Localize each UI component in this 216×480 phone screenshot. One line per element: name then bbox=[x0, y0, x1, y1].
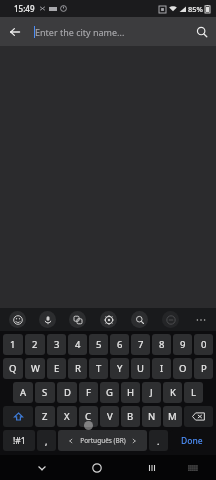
button[interactable]: D bbox=[57, 382, 77, 403]
staticText: 0 bbox=[201, 338, 207, 351]
button[interactable]: G bbox=[100, 382, 119, 403]
button[interactable]: 7 bbox=[131, 334, 150, 355]
button[interactable]: X bbox=[57, 406, 77, 427]
staticText: C bbox=[85, 410, 92, 423]
staticText: H bbox=[127, 386, 135, 399]
staticText: N bbox=[148, 410, 156, 423]
staticText: G bbox=[106, 386, 113, 399]
staticText: 2 bbox=[32, 338, 38, 351]
button[interactable]: Shift bbox=[3, 406, 33, 427]
button[interactable]: Home bbox=[86, 457, 108, 479]
button[interactable]: C bbox=[79, 406, 98, 427]
staticText: K bbox=[170, 386, 176, 399]
staticText: , bbox=[45, 435, 48, 447]
button[interactable]: T bbox=[89, 358, 108, 379]
button[interactable]: Recent apps bbox=[141, 457, 163, 479]
button[interactable]: 8 bbox=[152, 334, 171, 355]
staticText: 3 bbox=[54, 338, 60, 351]
button[interactable]: Emoji bbox=[9, 311, 26, 328]
button[interactable]: More options bbox=[193, 312, 209, 328]
button[interactable]: A bbox=[13, 382, 33, 403]
button[interactable]: U bbox=[131, 358, 150, 379]
button[interactable]: 6 bbox=[110, 334, 129, 355]
staticText: L bbox=[191, 386, 196, 399]
staticText: 9 bbox=[180, 338, 186, 351]
button[interactable]: J bbox=[142, 382, 161, 403]
staticText: S bbox=[42, 386, 48, 399]
button[interactable]: 1 bbox=[3, 334, 23, 355]
staticText: R bbox=[75, 362, 81, 375]
button[interactable]: 3 bbox=[47, 334, 66, 355]
staticText: B bbox=[127, 410, 134, 423]
button[interactable]: Space, Português (BR) bbox=[58, 430, 147, 451]
staticText: I bbox=[160, 362, 164, 375]
button[interactable]: K bbox=[163, 382, 182, 403]
button[interactable]: Enter the city name... bbox=[29, 17, 187, 46]
staticText: F bbox=[86, 386, 91, 399]
staticText: W bbox=[31, 362, 40, 375]
button[interactable]: W bbox=[25, 358, 45, 379]
staticText: . bbox=[157, 435, 160, 447]
button[interactable]: , bbox=[37, 430, 56, 451]
button[interactable]: Voice input bbox=[39, 311, 56, 328]
button[interactable]: . bbox=[149, 430, 168, 451]
button[interactable]: Z bbox=[35, 406, 55, 427]
button[interactable]: 5 bbox=[89, 334, 108, 355]
button[interactable]: B bbox=[121, 406, 140, 427]
staticText: V bbox=[107, 410, 113, 423]
button[interactable]: Settings bbox=[100, 311, 117, 328]
button[interactable]: R bbox=[68, 358, 87, 379]
staticText: O bbox=[179, 362, 187, 375]
staticText: 5 bbox=[96, 338, 102, 351]
button[interactable]: M bbox=[163, 406, 182, 427]
staticText: Enter the city name... bbox=[35, 26, 125, 38]
button[interactable]: S bbox=[35, 382, 55, 403]
staticText: 15:49 bbox=[14, 3, 35, 14]
button[interactable]: 0 bbox=[194, 334, 213, 355]
staticText: 8 bbox=[159, 338, 165, 351]
button[interactable]: Hide keyboard bbox=[31, 457, 53, 479]
button[interactable]: 2 bbox=[25, 334, 45, 355]
staticText: T bbox=[96, 362, 102, 375]
staticText: 85% bbox=[188, 4, 203, 14]
staticText: Português (BR) bbox=[80, 436, 126, 445]
staticText: Y bbox=[117, 362, 123, 375]
button[interactable]: N bbox=[142, 406, 161, 427]
staticText: E bbox=[54, 362, 60, 375]
button[interactable]: Y bbox=[110, 358, 129, 379]
staticText: M bbox=[168, 410, 177, 423]
staticText: !#1 bbox=[13, 435, 26, 447]
button[interactable]: Done bbox=[170, 430, 213, 451]
button[interactable]: Translate bbox=[162, 311, 179, 328]
button[interactable]: Back bbox=[0, 17, 29, 46]
staticText: A bbox=[20, 386, 27, 399]
button[interactable]: L bbox=[184, 382, 203, 403]
button[interactable]: Search bbox=[187, 17, 216, 46]
button[interactable]: 9 bbox=[173, 334, 192, 355]
staticText: 6 bbox=[117, 338, 123, 351]
staticText: U bbox=[137, 362, 144, 375]
button[interactable]: Q bbox=[3, 358, 23, 379]
button[interactable]: I bbox=[152, 358, 171, 379]
staticText: Z bbox=[42, 410, 48, 423]
button[interactable]: 4 bbox=[68, 334, 87, 355]
button[interactable]: Backspace bbox=[184, 406, 213, 427]
button[interactable]: O bbox=[173, 358, 192, 379]
button[interactable]: F bbox=[79, 382, 98, 403]
staticText: 4 bbox=[75, 338, 81, 351]
staticText: D bbox=[64, 386, 71, 399]
button[interactable]: Stickers bbox=[69, 311, 86, 328]
staticText: P bbox=[201, 362, 207, 375]
staticText: 1 bbox=[10, 338, 16, 351]
staticText: Done bbox=[181, 435, 203, 447]
staticText: J bbox=[150, 386, 153, 399]
button[interactable]: Keyboard switcher bbox=[183, 458, 203, 478]
button[interactable]: V bbox=[100, 406, 119, 427]
button[interactable]: H bbox=[121, 382, 140, 403]
staticText: Q bbox=[9, 362, 17, 375]
button[interactable]: Search bbox=[131, 311, 148, 328]
staticText: X bbox=[64, 410, 70, 423]
button[interactable]: P bbox=[194, 358, 213, 379]
button[interactable]: E bbox=[47, 358, 66, 379]
button[interactable]: !#1 bbox=[3, 430, 35, 451]
